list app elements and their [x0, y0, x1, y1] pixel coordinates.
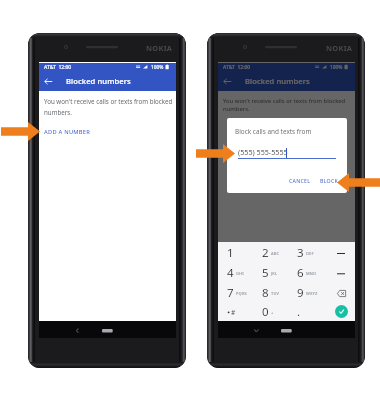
staticText: ADD A NUMBER [44, 128, 91, 136]
staticText: AT&T 12:00 [223, 64, 251, 71]
staticText: (555) 555-5555 [238, 147, 288, 157]
button[interactable]: BLOCK [317, 175, 341, 186]
other: Tap Add a number [1, 122, 40, 141]
staticText: 9 [297, 285, 304, 301]
button[interactable]: ADD A NUMBER [39, 124, 176, 138]
staticText: 4 [227, 265, 234, 281]
staticText: AT&T 12:00 [44, 64, 72, 71]
button[interactable]: Back [223, 77, 232, 86]
button[interactable]: Done [328, 302, 354, 321]
staticText: 7 [227, 285, 234, 301]
other: Type the number [196, 144, 235, 163]
button[interactable]: 0 [258, 302, 292, 322]
staticText: 100% [151, 64, 164, 71]
staticText: + [271, 310, 274, 315]
staticText: JKL [271, 271, 278, 276]
staticText: Blocked numbers [66, 76, 131, 86]
staticText: 3 [297, 245, 304, 261]
staticText: ABC [271, 251, 280, 256]
staticText: PQRS [236, 291, 247, 296]
button[interactable]: 9 [293, 283, 327, 303]
staticText: CANCEL [289, 177, 311, 184]
button[interactable]: Back [44, 77, 53, 86]
button[interactable]: 4 [223, 263, 257, 283]
staticText: 1 [227, 245, 234, 261]
staticText: You won't receive calls or texts from bl… [44, 97, 176, 116]
button[interactable]: 3 [293, 243, 327, 263]
staticText: NOKIA [326, 43, 353, 53]
button[interactable]: 7 [223, 283, 257, 303]
staticText: 0 [262, 304, 269, 320]
staticText: 2 [262, 245, 269, 261]
staticText: # [231, 308, 236, 317]
staticText: DEF [306, 251, 314, 256]
button[interactable]: 1 [223, 243, 257, 263]
button[interactable]: # [223, 302, 257, 322]
staticText: 8 [262, 285, 269, 301]
staticText: You won't receive calls or texts from bl… [223, 97, 353, 113]
button[interactable]: Backspace [328, 283, 354, 303]
button[interactable]: Dash [328, 243, 354, 263]
staticText: GHI [236, 271, 244, 276]
staticText: Blocked numbers [245, 76, 310, 86]
other: Tap Block [337, 173, 380, 192]
staticText: . [297, 304, 301, 320]
button[interactable]: 6 [293, 263, 327, 283]
staticText: BLOCK [320, 177, 338, 184]
button[interactable]: . [293, 302, 327, 322]
staticText: TUV [271, 291, 280, 296]
staticText: MNO [306, 271, 317, 276]
button[interactable]: 2 [258, 243, 292, 263]
staticText: 5 [262, 265, 269, 281]
button[interactable]: 8 [258, 283, 292, 303]
button[interactable]: CANCEL [287, 175, 313, 186]
staticText: NOKIA [146, 43, 173, 53]
staticText: 100% [330, 64, 343, 71]
button[interactable]: 5 [258, 263, 292, 283]
staticText: WXYZ [306, 291, 318, 296]
staticText: 6 [297, 265, 304, 281]
button[interactable]: Pause [328, 263, 354, 283]
staticText: Block calls and texts from [235, 127, 312, 136]
